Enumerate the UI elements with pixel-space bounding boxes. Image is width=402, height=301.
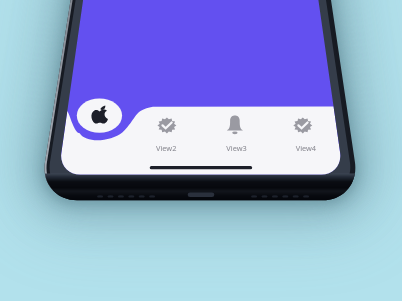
button[interactable]: Home [66, 92, 134, 150]
button[interactable]: View2 [134, 107, 202, 155]
button[interactable]: View4 [270, 107, 338, 155]
button[interactable]: View3 [202, 107, 270, 155]
